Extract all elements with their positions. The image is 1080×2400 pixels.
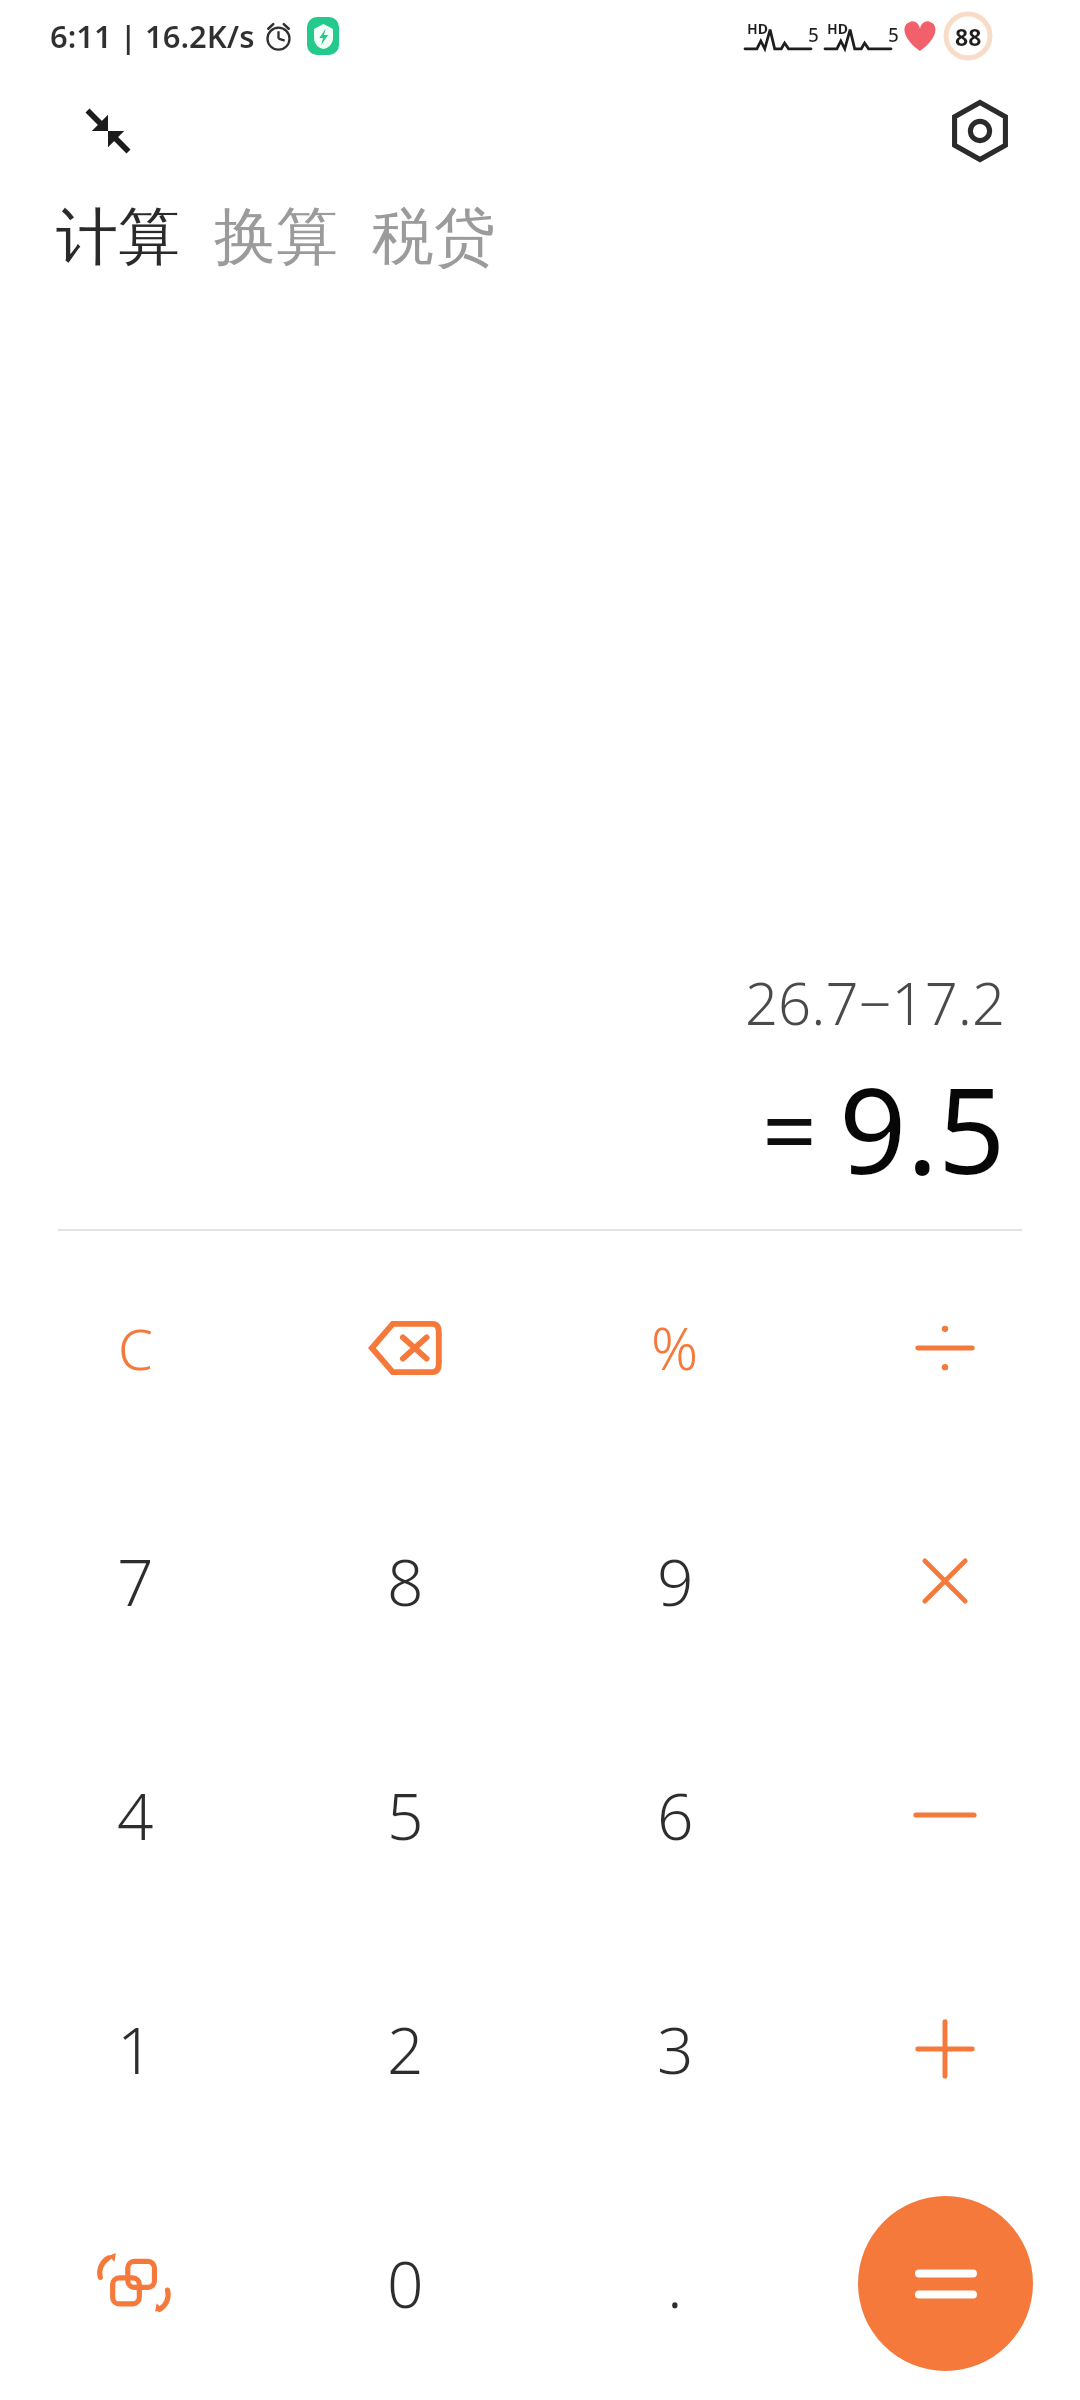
staticText: 3 bbox=[657, 2006, 694, 2093]
button[interactable]: 计算 bbox=[52, 190, 184, 284]
staticText: 2 bbox=[387, 2006, 424, 2093]
staticText: 税贷 bbox=[372, 198, 496, 276]
staticText: 计算 bbox=[56, 198, 180, 276]
staticText: 7 bbox=[117, 1538, 154, 1625]
button[interactable]: Convert units bbox=[0, 2166, 270, 2400]
button[interactable]: Backspace bbox=[270, 1231, 540, 1464]
button[interactable]: 税贷 bbox=[368, 190, 500, 284]
button[interactable]: % bbox=[540, 1231, 810, 1464]
staticText: 换算 bbox=[214, 198, 338, 276]
button[interactable]: 2 bbox=[270, 1932, 540, 2166]
staticText: 1 bbox=[117, 2006, 154, 2093]
button[interactable]: Divide bbox=[810, 1231, 1080, 1464]
button[interactable]: Multiply bbox=[810, 1464, 1080, 1698]
staticText: 9 bbox=[657, 1538, 694, 1625]
button[interactable]: 8 bbox=[270, 1464, 540, 1698]
staticText: % bbox=[651, 1308, 699, 1387]
button[interactable]: Settings bbox=[932, 83, 1028, 179]
button[interactable]: 5 bbox=[270, 1698, 540, 1932]
button[interactable]: 0 bbox=[270, 2166, 540, 2400]
button[interactable]: 3 bbox=[540, 1932, 810, 2166]
button[interactable]: 换算 bbox=[210, 190, 342, 284]
button[interactable]: Equals bbox=[858, 2196, 1033, 2371]
staticText: 5 bbox=[387, 1772, 424, 1859]
other: Backspace bbox=[360, 1303, 450, 1393]
staticText: 88 bbox=[955, 21, 982, 52]
staticText: 6 bbox=[657, 1772, 694, 1859]
staticText: 26.7−17.2 bbox=[745, 963, 1006, 1042]
other: Convert units bbox=[90, 2238, 180, 2328]
button[interactable]: Collapse bbox=[60, 83, 156, 179]
staticText: 4 bbox=[117, 1772, 154, 1859]
button[interactable]: Plus bbox=[810, 1932, 1080, 2166]
other: Multiply bbox=[902, 1538, 988, 1624]
button[interactable]: 6 bbox=[540, 1698, 810, 1932]
staticText: . bbox=[667, 2240, 683, 2327]
button[interactable]: C bbox=[0, 1231, 270, 1464]
other: Divide bbox=[902, 1305, 988, 1391]
staticText: HD bbox=[827, 19, 848, 38]
staticText: 6:11 | 16.2K/s bbox=[50, 15, 255, 57]
button[interactable]: 7 bbox=[0, 1464, 270, 1698]
staticText: = bbox=[762, 1063, 817, 1194]
other: Plus bbox=[902, 2006, 988, 2092]
staticText: 5 bbox=[888, 22, 899, 48]
staticText: 8 bbox=[387, 1538, 424, 1625]
button[interactable]: 9 bbox=[540, 1464, 810, 1698]
staticText: 0 bbox=[387, 2240, 424, 2327]
button[interactable]: . bbox=[540, 2166, 810, 2400]
other: Minus bbox=[902, 1772, 988, 1858]
staticText: HD bbox=[747, 19, 768, 38]
button[interactable]: 1 bbox=[0, 1932, 270, 2166]
staticText: 5 bbox=[808, 22, 819, 48]
staticText: 9.5 bbox=[839, 1048, 1006, 1209]
button[interactable]: 4 bbox=[0, 1698, 270, 1932]
button[interactable]: Minus bbox=[810, 1698, 1080, 1932]
staticText: C bbox=[118, 1310, 153, 1386]
